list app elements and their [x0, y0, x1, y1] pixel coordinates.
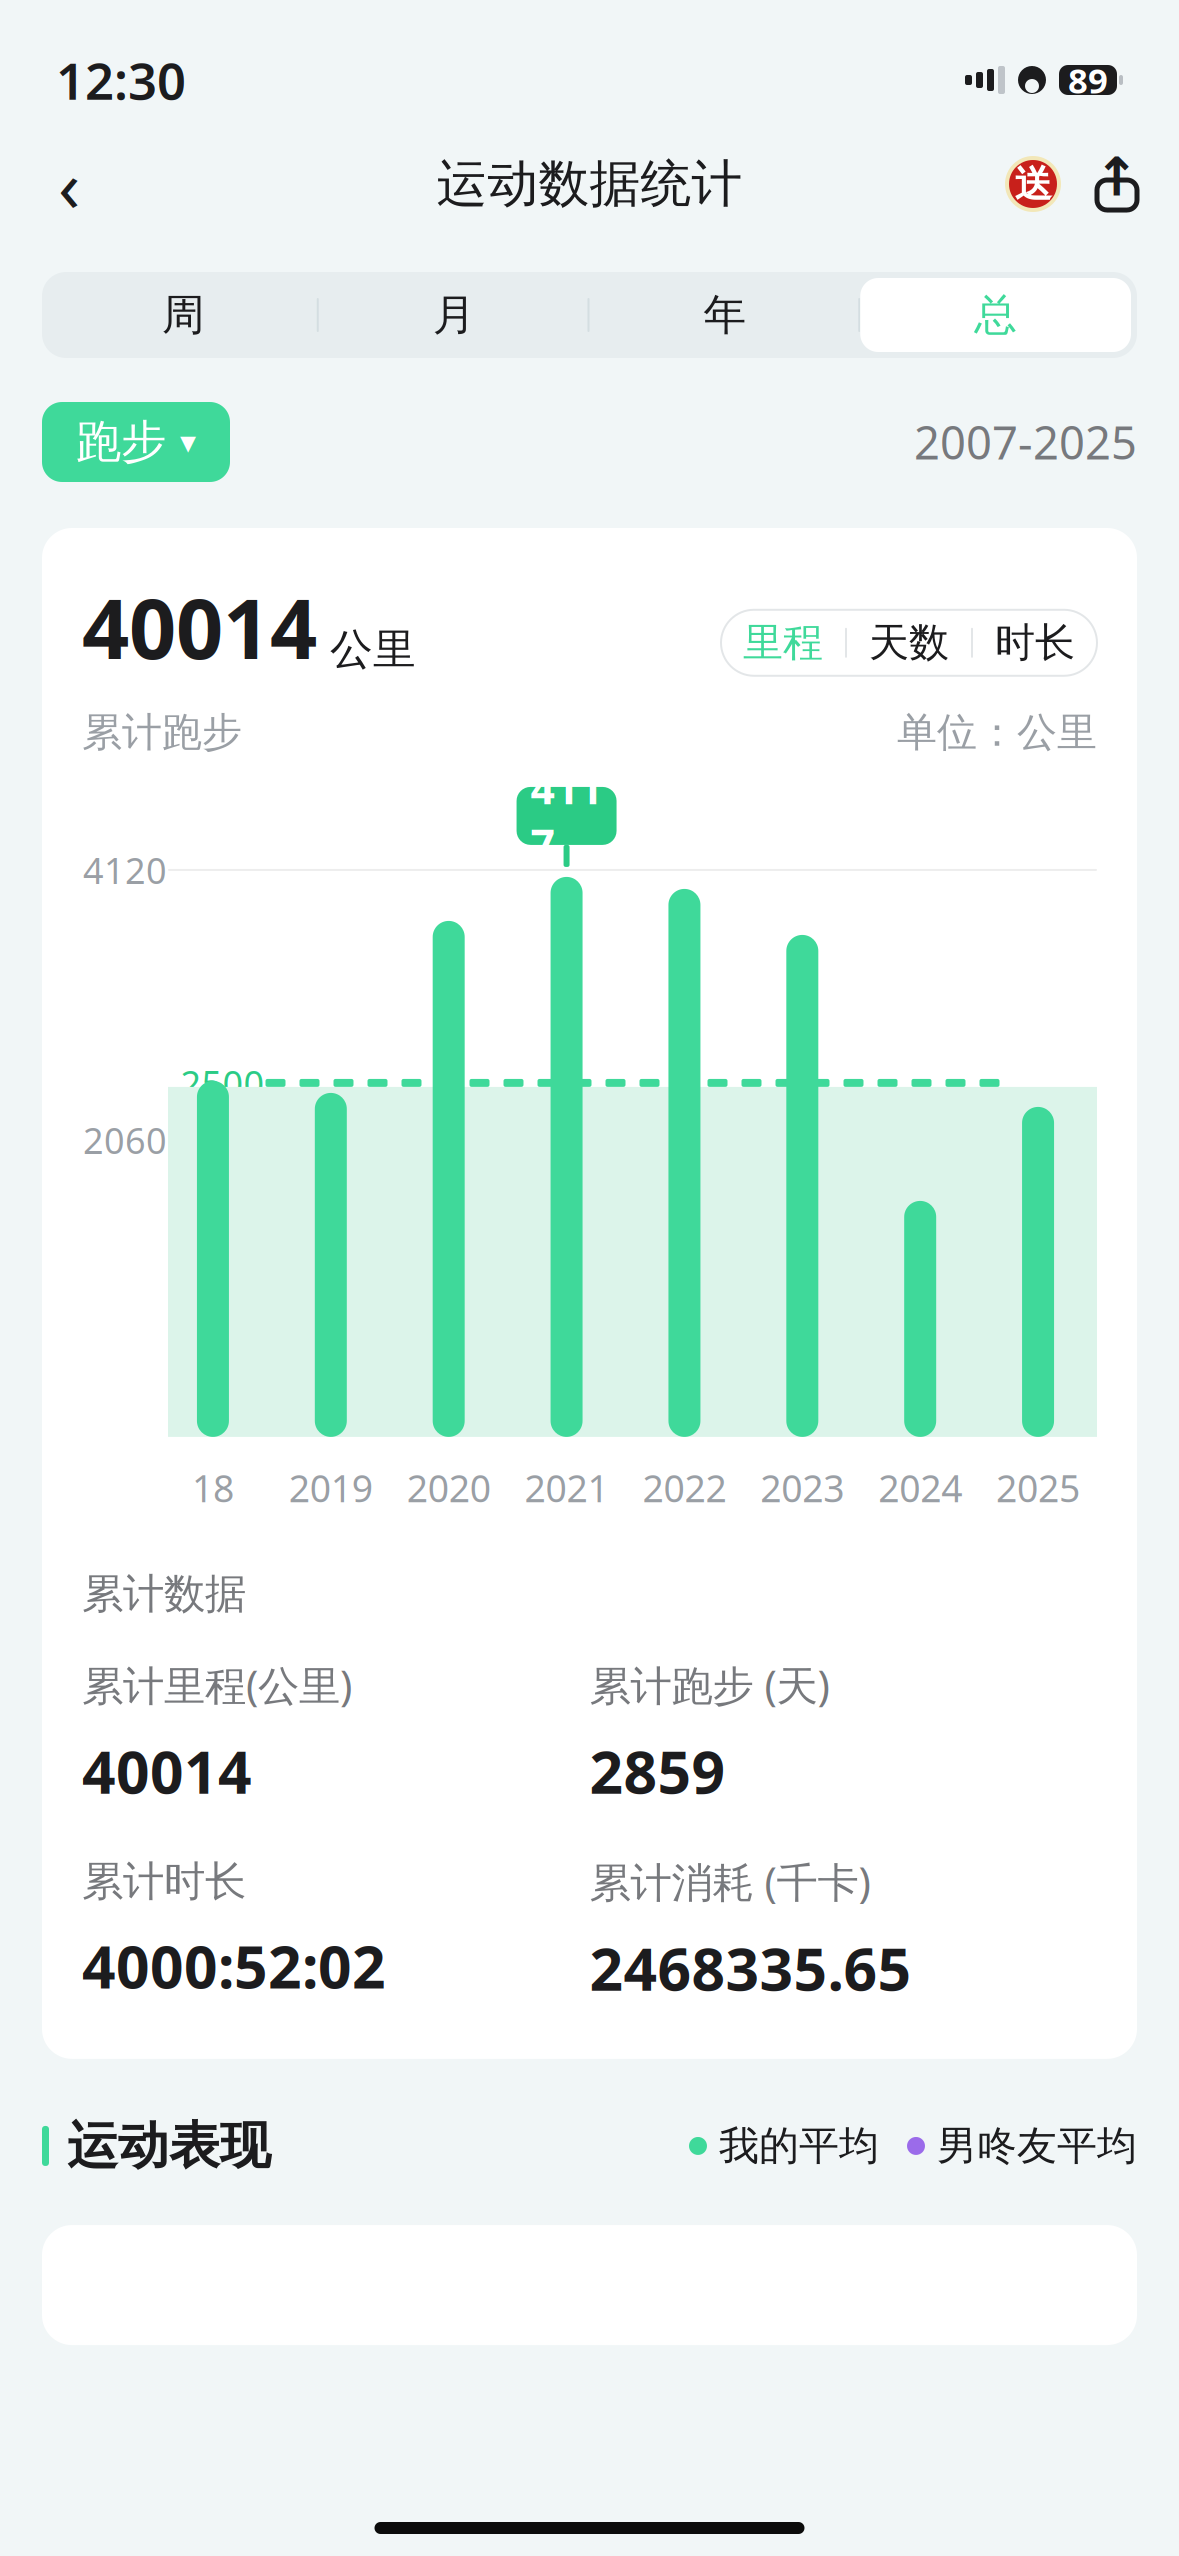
button[interactable]: 年 — [589, 278, 860, 352]
staticText: 累计跑步 (天) — [589, 1657, 829, 1712]
button[interactable]: 里程 — [721, 618, 845, 667]
staticText: 2468335.65 — [589, 1929, 911, 2007]
staticText: 2024 — [878, 1463, 962, 1512]
staticText: 89 — [1068, 57, 1108, 103]
button[interactable]: 时长 — [973, 618, 1097, 667]
staticText: 送 — [1014, 161, 1051, 207]
staticText: 2500 — [180, 1059, 264, 1107]
staticText: 4120 — [83, 846, 167, 894]
staticText: 运动数据统计 — [436, 153, 742, 215]
staticText: 时长 — [995, 618, 1075, 667]
staticText: 2025 — [996, 1463, 1080, 1512]
staticText: 天数 — [869, 618, 949, 667]
staticText: 总 — [974, 289, 1017, 341]
button[interactable]: 月 — [319, 278, 590, 352]
staticText: 18 — [192, 1463, 234, 1512]
staticText: 2022 — [642, 1463, 726, 1512]
staticText: 4117 — [531, 759, 603, 872]
button[interactable]: 周 — [48, 278, 319, 352]
staticText: 40014 — [82, 572, 317, 682]
staticText: 跑步 — [76, 414, 166, 470]
staticText: 2021 — [525, 1463, 609, 1512]
staticText: 累计时长 — [82, 1856, 246, 1907]
staticText: 单位：公里 — [897, 708, 1097, 757]
staticText: 运动表现 — [67, 2115, 271, 2177]
button[interactable]: Gift — [1003, 154, 1063, 214]
button[interactable]: Back — [34, 149, 104, 219]
staticText: 2859 — [589, 1732, 725, 1810]
staticText: ‹ — [58, 136, 80, 232]
button[interactable]: 跑步 — [42, 402, 230, 482]
staticText: 月 — [433, 289, 476, 341]
staticText: 累计消耗 (千卡) — [589, 1854, 870, 1909]
staticText: 4000:52:02 — [82, 1927, 386, 2005]
staticText: 年 — [703, 289, 746, 341]
staticText: 里程 — [743, 618, 823, 667]
staticText: 累计里程(公里) — [82, 1657, 352, 1712]
staticText: 2007-2025 — [914, 412, 1137, 472]
staticText: 12:30 — [56, 46, 186, 114]
staticText: 2060 — [83, 1116, 167, 1164]
staticText: ▾ — [180, 424, 196, 460]
button[interactable]: Share — [1089, 154, 1145, 214]
staticText: 男咚友平均 — [937, 2121, 1137, 2170]
staticText: 2020 — [407, 1463, 491, 1512]
staticText: 我的平均 — [719, 2121, 879, 2170]
staticText: 公里 — [317, 623, 416, 676]
staticText: 累计数据 — [82, 1568, 246, 1619]
staticText: 2019 — [289, 1463, 373, 1512]
staticText: 2023 — [760, 1463, 844, 1512]
button[interactable]: 总 — [860, 278, 1131, 352]
button[interactable]: 天数 — [847, 618, 971, 667]
staticText: ↑ — [1094, 147, 1139, 207]
staticText: 累计跑步 — [82, 708, 242, 757]
staticText: 40014 — [82, 1732, 252, 1810]
staticText: 周 — [162, 289, 205, 341]
